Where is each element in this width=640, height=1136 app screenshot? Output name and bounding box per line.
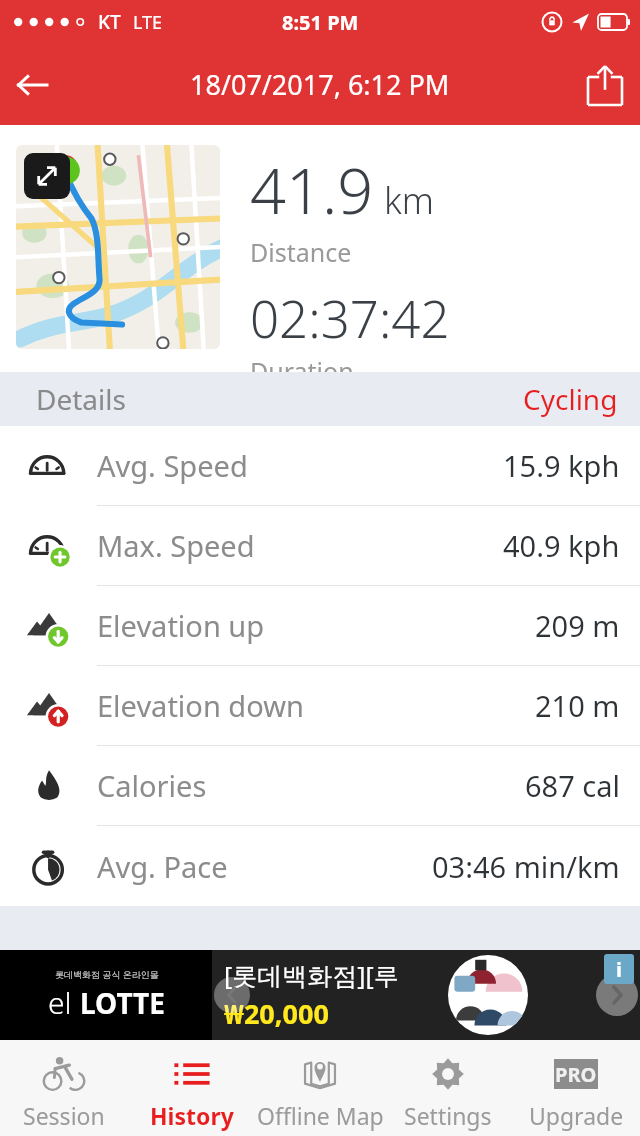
button[interactable]: History	[128, 1040, 256, 1136]
staticText: Avg. Pace	[97, 847, 228, 886]
staticText: Cycling	[523, 380, 618, 418]
button[interactable]: PRO	[512, 1040, 640, 1136]
button[interactable]: 롯데백화점 공식 온라인몰	[0, 950, 640, 1040]
staticText: [롯데백화점][루	[224, 958, 399, 992]
staticText: Details	[36, 380, 126, 418]
button[interactable]: Share	[570, 50, 640, 120]
staticText: 롯데백화점 공식 온라인몰	[55, 968, 159, 980]
button[interactable]: Elevation up	[0, 586, 640, 666]
staticText: KT	[98, 9, 121, 35]
staticText: Offline Map	[257, 1100, 384, 1131]
staticText: km	[384, 176, 434, 225]
button[interactable]: Settings	[384, 1040, 512, 1136]
staticText: 18/07/2017, 6:12 PM	[190, 66, 450, 103]
staticText: 41.9	[250, 147, 374, 233]
staticText: i	[616, 956, 622, 983]
staticText: Elevation up	[97, 606, 265, 645]
button[interactable]: Map	[16, 145, 220, 349]
staticText: History	[150, 1100, 234, 1131]
staticText: Duration	[250, 354, 354, 372]
staticText: el	[48, 982, 72, 1023]
staticText: PRO	[555, 1061, 597, 1088]
button[interactable]: Calories	[0, 746, 640, 826]
staticText: Elevation down	[97, 686, 304, 725]
staticText: 210 m	[535, 686, 620, 725]
staticText: Calories	[97, 766, 207, 805]
staticText: Max. Speed	[97, 526, 255, 565]
staticText: LOTTE	[80, 984, 165, 1022]
staticText: Distance	[250, 235, 352, 269]
staticText: 687 cal	[525, 766, 620, 805]
button[interactable]: Offline Map	[256, 1040, 384, 1136]
staticText: 8:51 PM	[282, 9, 359, 36]
staticText: 209 m	[535, 606, 620, 645]
staticText: 03:46 min/km	[432, 847, 620, 886]
staticText: ₩20,000	[224, 995, 329, 1032]
staticText: 02:37:42	[250, 283, 450, 352]
button[interactable]: Back	[0, 53, 64, 117]
button[interactable]: Avg. Pace	[0, 826, 640, 906]
staticText: Upgrade	[529, 1100, 624, 1131]
staticText: 40.9 kph	[503, 526, 620, 565]
staticText: Settings	[404, 1100, 492, 1131]
staticText: Session	[23, 1100, 105, 1131]
button[interactable]: Session	[0, 1040, 128, 1136]
staticText: LTE	[133, 10, 163, 35]
button[interactable]: Max. Speed	[0, 506, 640, 586]
staticText: Avg. Speed	[97, 446, 248, 485]
button[interactable]: Elevation down	[0, 666, 640, 746]
staticText: 15.9 kph	[503, 446, 620, 485]
button[interactable]: Avg. Speed	[0, 426, 640, 506]
